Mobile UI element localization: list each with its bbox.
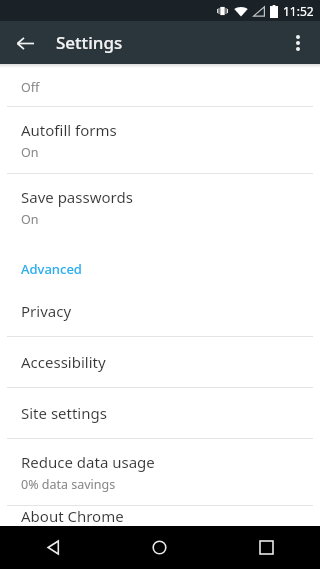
staticText: On — [21, 144, 39, 161]
button[interactable]: Privacy — [0, 286, 320, 336]
button[interactable]: Reduce data usage — [0, 439, 320, 505]
button[interactable]: More options — [280, 25, 316, 61]
button[interactable]: Site settings — [0, 388, 320, 438]
staticText: On — [21, 211, 39, 228]
button[interactable]: Home — [106, 526, 213, 569]
staticText: Advanced — [21, 260, 82, 278]
staticText: 0% data savings — [21, 476, 116, 493]
button[interactable]: About Chrome — [0, 506, 320, 526]
staticText: Autofill forms — [21, 120, 117, 140]
button[interactable]: Back — [0, 526, 106, 569]
staticText: 11:52 — [283, 3, 314, 19]
staticText: Off — [21, 79, 40, 96]
staticText: Privacy — [21, 301, 72, 321]
button[interactable]: Back — [8, 26, 42, 60]
staticText: About Chrome — [21, 506, 124, 526]
button[interactable]: Save passwords — [0, 174, 320, 240]
button[interactable]: Recent apps — [213, 526, 320, 569]
button[interactable]: Accessibility — [0, 337, 320, 387]
button[interactable]: Off — [0, 64, 320, 106]
staticText: Reduce data usage — [21, 452, 155, 472]
staticText: Accessibility — [21, 352, 106, 372]
button[interactable]: Autofill forms — [0, 107, 320, 173]
staticText: Settings — [56, 31, 123, 54]
staticText: Site settings — [21, 403, 107, 423]
staticText: Save passwords — [21, 187, 133, 207]
